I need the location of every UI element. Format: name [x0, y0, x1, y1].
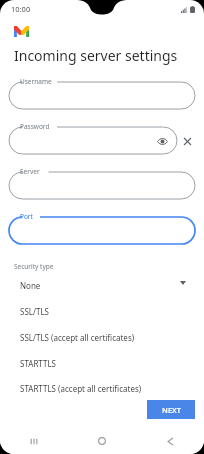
staticText: Incoming server settings: [14, 46, 178, 65]
button[interactable]: Clear password: [179, 133, 195, 149]
button[interactable]: None: [8, 272, 175, 298]
button[interactable]: Username: [9, 77, 195, 109]
button[interactable]: Back: [136, 428, 204, 454]
staticText: SSL/TLS: [20, 306, 49, 317]
staticText: Password: [20, 122, 50, 131]
staticText: None: [20, 280, 41, 291]
staticText: Port: [20, 212, 33, 221]
staticText: SSL/TLS (accept all certificates): [20, 332, 135, 343]
button[interactable]: NEXT: [147, 400, 195, 419]
staticText: Security type: [14, 262, 54, 271]
staticText: NEXT: [162, 405, 181, 415]
button[interactable]: Home: [68, 428, 136, 454]
staticText: STARTTLS (accept all certificates): [20, 383, 142, 394]
staticText: Server: [20, 167, 40, 176]
button[interactable]: Show password: [155, 134, 169, 148]
staticText: STARTTLS: [20, 358, 57, 369]
button[interactable]: Password: [9, 122, 177, 154]
button[interactable]: Port: [9, 212, 195, 244]
button[interactable]: STARTTLS: [8, 350, 175, 376]
button[interactable]: Recent apps: [0, 428, 68, 454]
staticText: 10:00: [11, 4, 31, 14]
button[interactable]: Server: [9, 167, 195, 199]
staticText: Username: [20, 77, 52, 86]
button[interactable]: SSL/TLS (accept all certificates): [8, 324, 175, 350]
button[interactable]: STARTTLS (accept all certificates): [8, 376, 175, 400]
button[interactable]: Security type dropdown: [176, 276, 190, 290]
button[interactable]: SSL/TLS: [8, 298, 175, 324]
